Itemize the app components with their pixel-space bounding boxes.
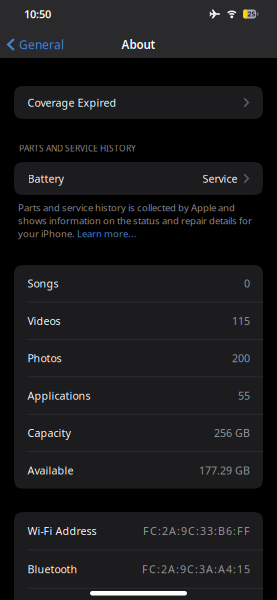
staticText: FC:2A:9C:33:B6:FF [143, 524, 250, 538]
button[interactable]: Battery [14, 162, 263, 195]
staticText: 55 [238, 388, 250, 403]
staticText: your iPhone. [18, 227, 77, 240]
staticText: About [121, 36, 155, 52]
staticText: Applications [27, 388, 90, 403]
staticText: 10:50 [24, 6, 51, 22]
staticText: 115 [232, 314, 250, 328]
staticText: 200 [232, 351, 250, 365]
staticText: shows information on the status and repa… [18, 214, 252, 227]
staticText: Videos [27, 314, 60, 328]
staticText: Available [27, 463, 73, 477]
staticText: Parts and service history is collected b… [18, 201, 235, 214]
staticText: Service [202, 171, 237, 186]
staticText: 177.29 GB [199, 463, 250, 477]
staticText: 256 GB [214, 426, 250, 440]
staticText: FC:2A:9C:3A:A4:15 [142, 562, 250, 576]
staticText: Bluetooth [27, 562, 77, 576]
staticText: General [19, 36, 64, 52]
button[interactable]: Coverage Expired [14, 86, 263, 119]
staticText: PARTS AND SERVICE HISTORY [19, 143, 136, 154]
staticText: Battery [27, 171, 63, 186]
button[interactable]: Learn more... [77, 227, 137, 240]
staticText: Wi-Fi Address [27, 524, 96, 538]
staticText: Photos [27, 351, 61, 365]
staticText: Capacity [27, 426, 70, 440]
staticText: 25 [247, 10, 255, 18]
staticText: Learn more... [77, 227, 137, 240]
staticText: Coverage Expired [27, 95, 116, 110]
staticText: Songs [27, 276, 58, 290]
button[interactable]: Back [0, 36, 64, 52]
staticText: 0 [244, 276, 250, 290]
